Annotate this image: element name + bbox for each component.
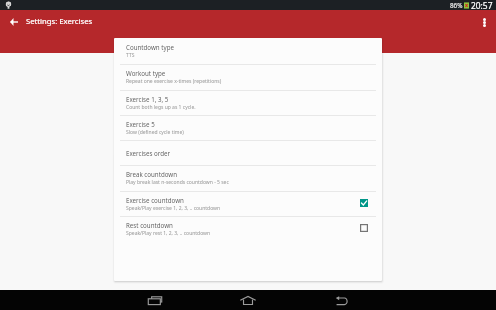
- staticText: TTS: [126, 52, 135, 59]
- staticText: Exercises order: [126, 149, 171, 157]
- button[interactable]: Exercise 5: [114, 115, 382, 140]
- button[interactable]: Workout type: [114, 64, 382, 89]
- staticText: Countdown type: [126, 43, 174, 51]
- staticText: Rest countdown: [126, 221, 173, 229]
- staticText: Speak/Play exercise 1, 2, 3, .. countdow…: [126, 205, 221, 212]
- button[interactable]: Break countdown: [114, 165, 382, 191]
- button[interactable]: More options: [475, 12, 493, 30]
- button[interactable]: Back: [4, 11, 24, 31]
- button[interactable]: Rest countdown: [114, 216, 382, 241]
- button[interactable]: Exercise countdown: [114, 191, 382, 216]
- button[interactable]: Exercise 1, 3, 5: [114, 90, 382, 115]
- button[interactable]: Exercises order: [114, 140, 382, 165]
- staticText: Count both legs up as 1 cycle.: [126, 104, 196, 111]
- staticText: Settings: Exercises: [26, 16, 93, 26]
- staticText: Break countdown: [126, 170, 178, 178]
- staticText: Workout type: [126, 69, 166, 77]
- button[interactable]: Countdown type: [114, 38, 382, 64]
- staticText: Repeat one exercise x-times (repetitions…: [126, 78, 222, 85]
- staticText: Play break last n-seconds countdown - 5 …: [126, 179, 229, 186]
- button[interactable]: Home: [238, 290, 258, 310]
- staticText: Exercise countdown: [126, 196, 184, 204]
- staticText: Speak/Play rest 1, 2, 3, .. countdown: [126, 230, 211, 237]
- staticText: Exercise 1, 3, 5: [126, 95, 169, 103]
- staticText: Slow (defined cycle time): [126, 129, 184, 136]
- button[interactable]: Back: [331, 290, 351, 310]
- staticText: Exercise 5: [126, 120, 155, 128]
- button[interactable]: Recents: [144, 290, 165, 310]
- staticText: 86%: [450, 1, 463, 10]
- staticText: 20:57: [471, 0, 493, 10]
